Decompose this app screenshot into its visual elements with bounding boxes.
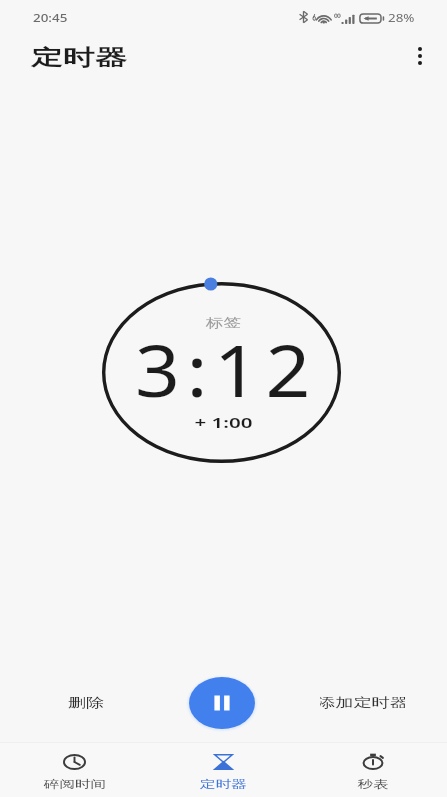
button[interactable]: Pause: [189, 677, 255, 729]
button[interactable]: 秒表: [298, 743, 447, 797]
staticText: 标签: [206, 315, 241, 331]
button[interactable]: More options: [397, 33, 442, 78]
staticText: 添加定时器: [320, 694, 405, 710]
staticText: 定时器: [200, 777, 247, 791]
staticText: 秒表: [357, 777, 389, 791]
staticText: 3:12: [135, 320, 317, 418]
button[interactable]: 删除: [63, 689, 109, 715]
staticText: 定时器: [31, 44, 127, 71]
button[interactable]: 碎阅时间: [0, 743, 149, 797]
button[interactable]: 添加定时器: [320, 689, 405, 715]
button[interactable]: Timer: [102, 282, 341, 463]
staticText: 删除: [68, 694, 104, 710]
staticText: + 1:00: [194, 412, 253, 432]
button[interactable]: 定时器: [149, 743, 298, 797]
staticText: 20:45: [33, 10, 68, 25]
staticText: 28%: [388, 10, 415, 25]
staticText: 碎阅时间: [44, 777, 106, 791]
